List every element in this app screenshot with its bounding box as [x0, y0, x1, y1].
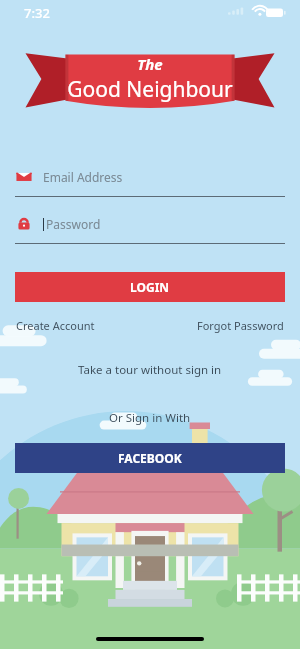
button[interactable]: FACEBOOK [15, 443, 285, 473]
staticText: Take a tour without sign in [78, 362, 222, 378]
staticText: Forgot Password [197, 318, 284, 333]
staticText: Email Address [43, 169, 123, 185]
staticText: Good Neighbour [67, 75, 233, 104]
button[interactable]: Create Account [14, 316, 97, 335]
staticText: 7:32 [24, 4, 50, 22]
button[interactable]: Take a tour without sign in [0, 359, 300, 381]
staticText: Or Sign in With [109, 410, 191, 426]
staticText: Password [46, 216, 101, 232]
staticText: FACEBOOK [118, 450, 182, 466]
staticText: Create Account [16, 318, 95, 333]
staticText: The [137, 54, 163, 74]
staticText: LOGIN [130, 279, 170, 295]
button[interactable]: Forgot Password [195, 316, 286, 335]
button[interactable]: LOGIN [15, 272, 285, 302]
